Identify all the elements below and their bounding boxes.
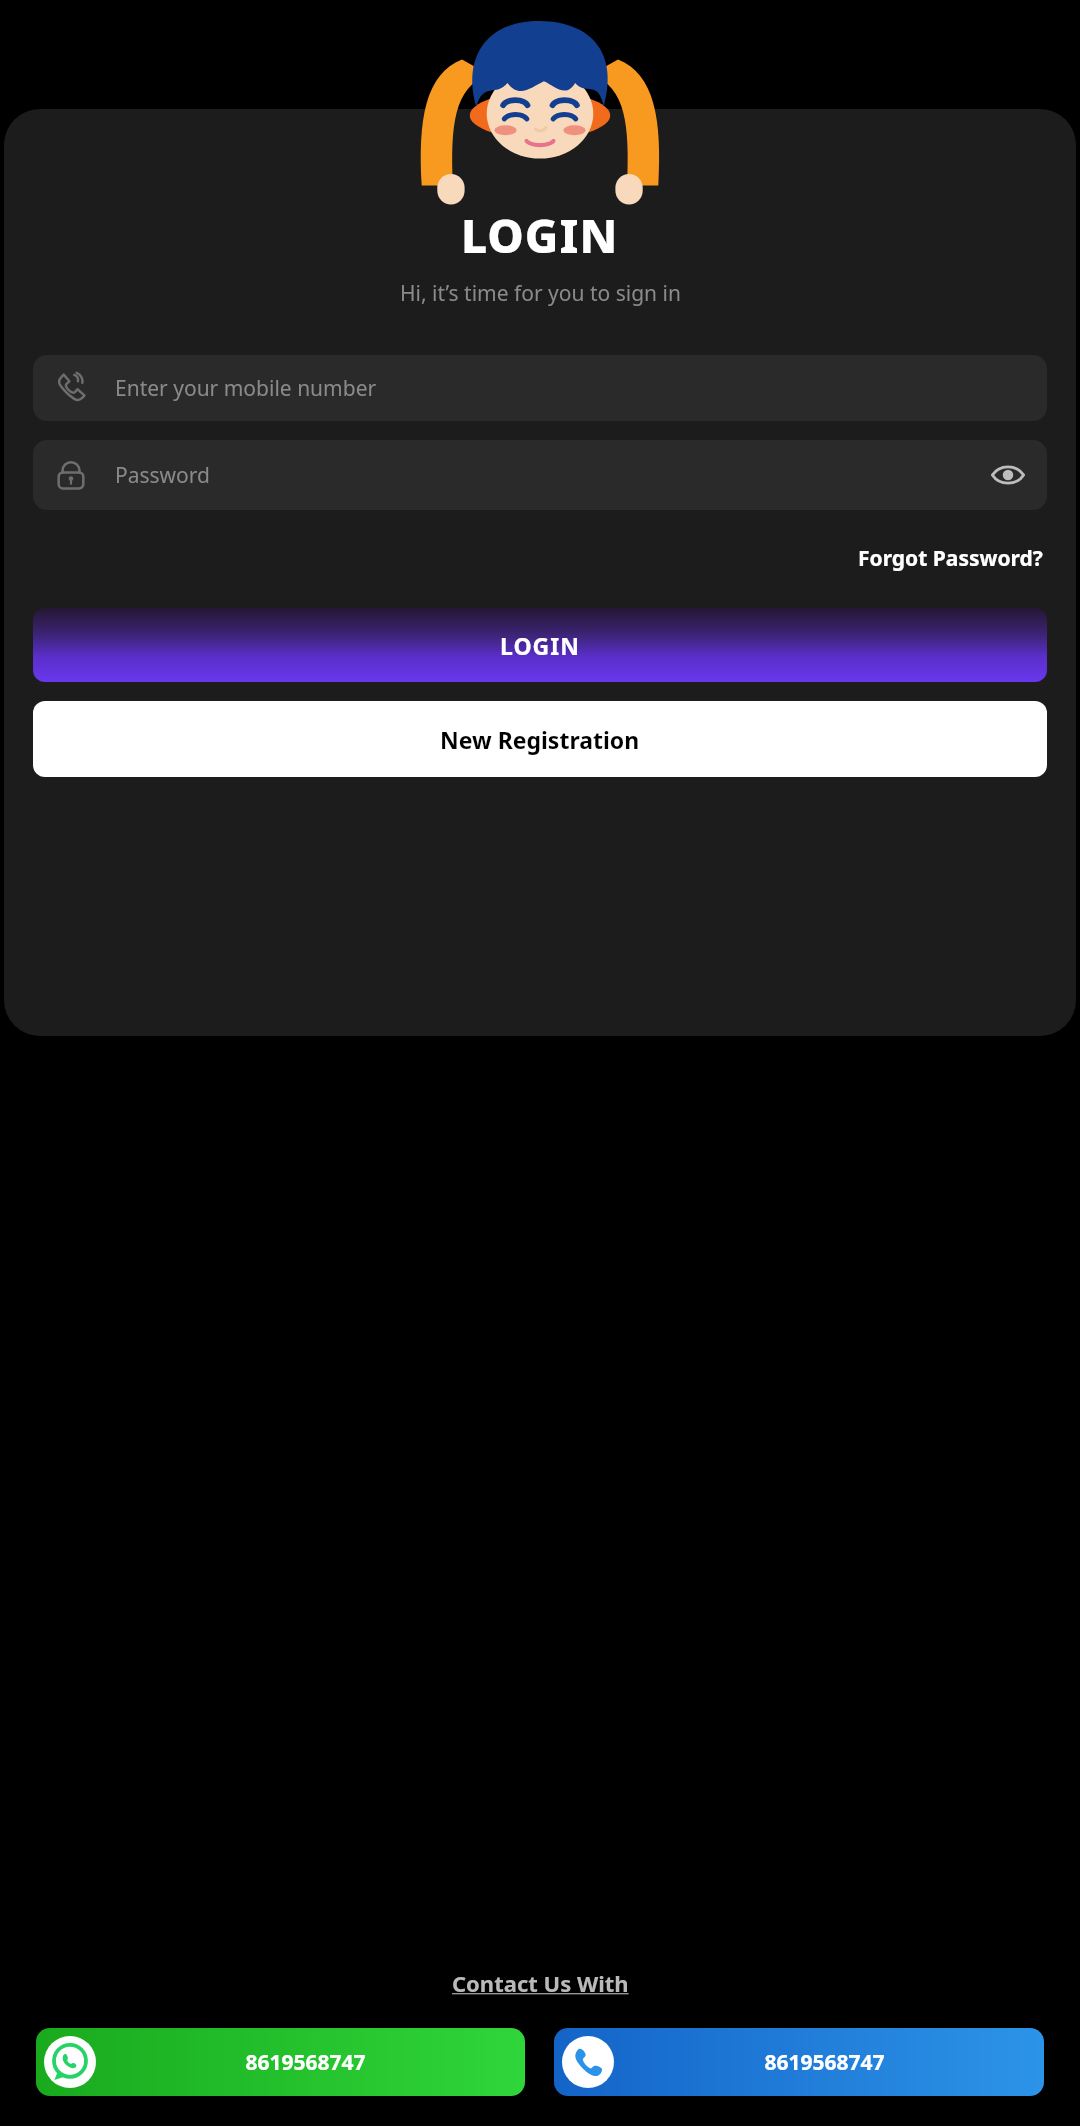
staticText: 8619568747 <box>245 2048 366 2077</box>
staticText: Password <box>115 461 987 490</box>
button[interactable]: Contact Us With <box>452 1968 629 1998</box>
staticText: Hi, it’s time for you to sign in <box>400 279 681 308</box>
staticText: Forgot Password? <box>858 544 1043 573</box>
staticText: Enter your mobile number <box>115 374 377 403</box>
button[interactable]: Password <box>33 440 1047 510</box>
button[interactable]: New Registration <box>33 701 1047 777</box>
staticText: New Registration <box>440 724 640 755</box>
button[interactable]: 8619568747 <box>36 2028 525 2096</box>
button[interactable]: LOGIN <box>33 608 1047 682</box>
staticText: 8619568747 <box>764 2048 885 2077</box>
staticText: LOGIN <box>461 204 619 267</box>
button[interactable]: Enter your mobile number <box>33 355 1047 421</box>
staticText: LOGIN <box>500 630 580 661</box>
button[interactable]: Forgot Password? <box>854 540 1047 577</box>
button[interactable]: Show password <box>987 454 1029 496</box>
button[interactable]: 8619568747 <box>554 2028 1044 2096</box>
